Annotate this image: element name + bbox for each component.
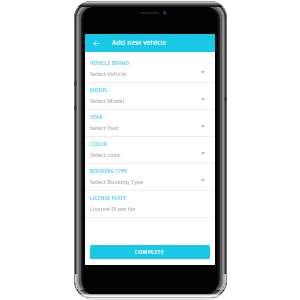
staticText: VEHICLE BRAND <box>90 60 130 67</box>
staticText: Select Booking Type <box>90 178 144 186</box>
button[interactable]: VEHICLE BRAND <box>85 56 215 83</box>
staticText: LICENSE PLATE <box>90 195 127 202</box>
staticText: COMPLETE <box>135 249 165 256</box>
staticText: MODEL <box>90 87 108 94</box>
button[interactable]: BOOKING TYPE <box>85 164 215 191</box>
staticText: Select color <box>90 151 121 159</box>
staticText: COLOR <box>90 141 107 148</box>
staticText: YEAR <box>90 114 103 121</box>
button[interactable]: COLOR <box>85 137 215 164</box>
button[interactable]: LICENSE PLATE <box>85 191 215 218</box>
staticText: Select Year <box>90 124 119 132</box>
button[interactable]: YEAR <box>85 110 215 137</box>
staticText: BOOKING TYPE <box>90 168 128 175</box>
button[interactable]: COMPLETE <box>90 245 210 259</box>
staticText: Select Vehicle <box>90 70 127 78</box>
staticText: Add new vehicle <box>112 38 167 48</box>
button[interactable]: Back <box>85 34 107 52</box>
button[interactable]: MODEL <box>85 83 215 110</box>
staticText: License PLate No <box>90 205 136 213</box>
staticText: Select Model <box>90 97 125 105</box>
